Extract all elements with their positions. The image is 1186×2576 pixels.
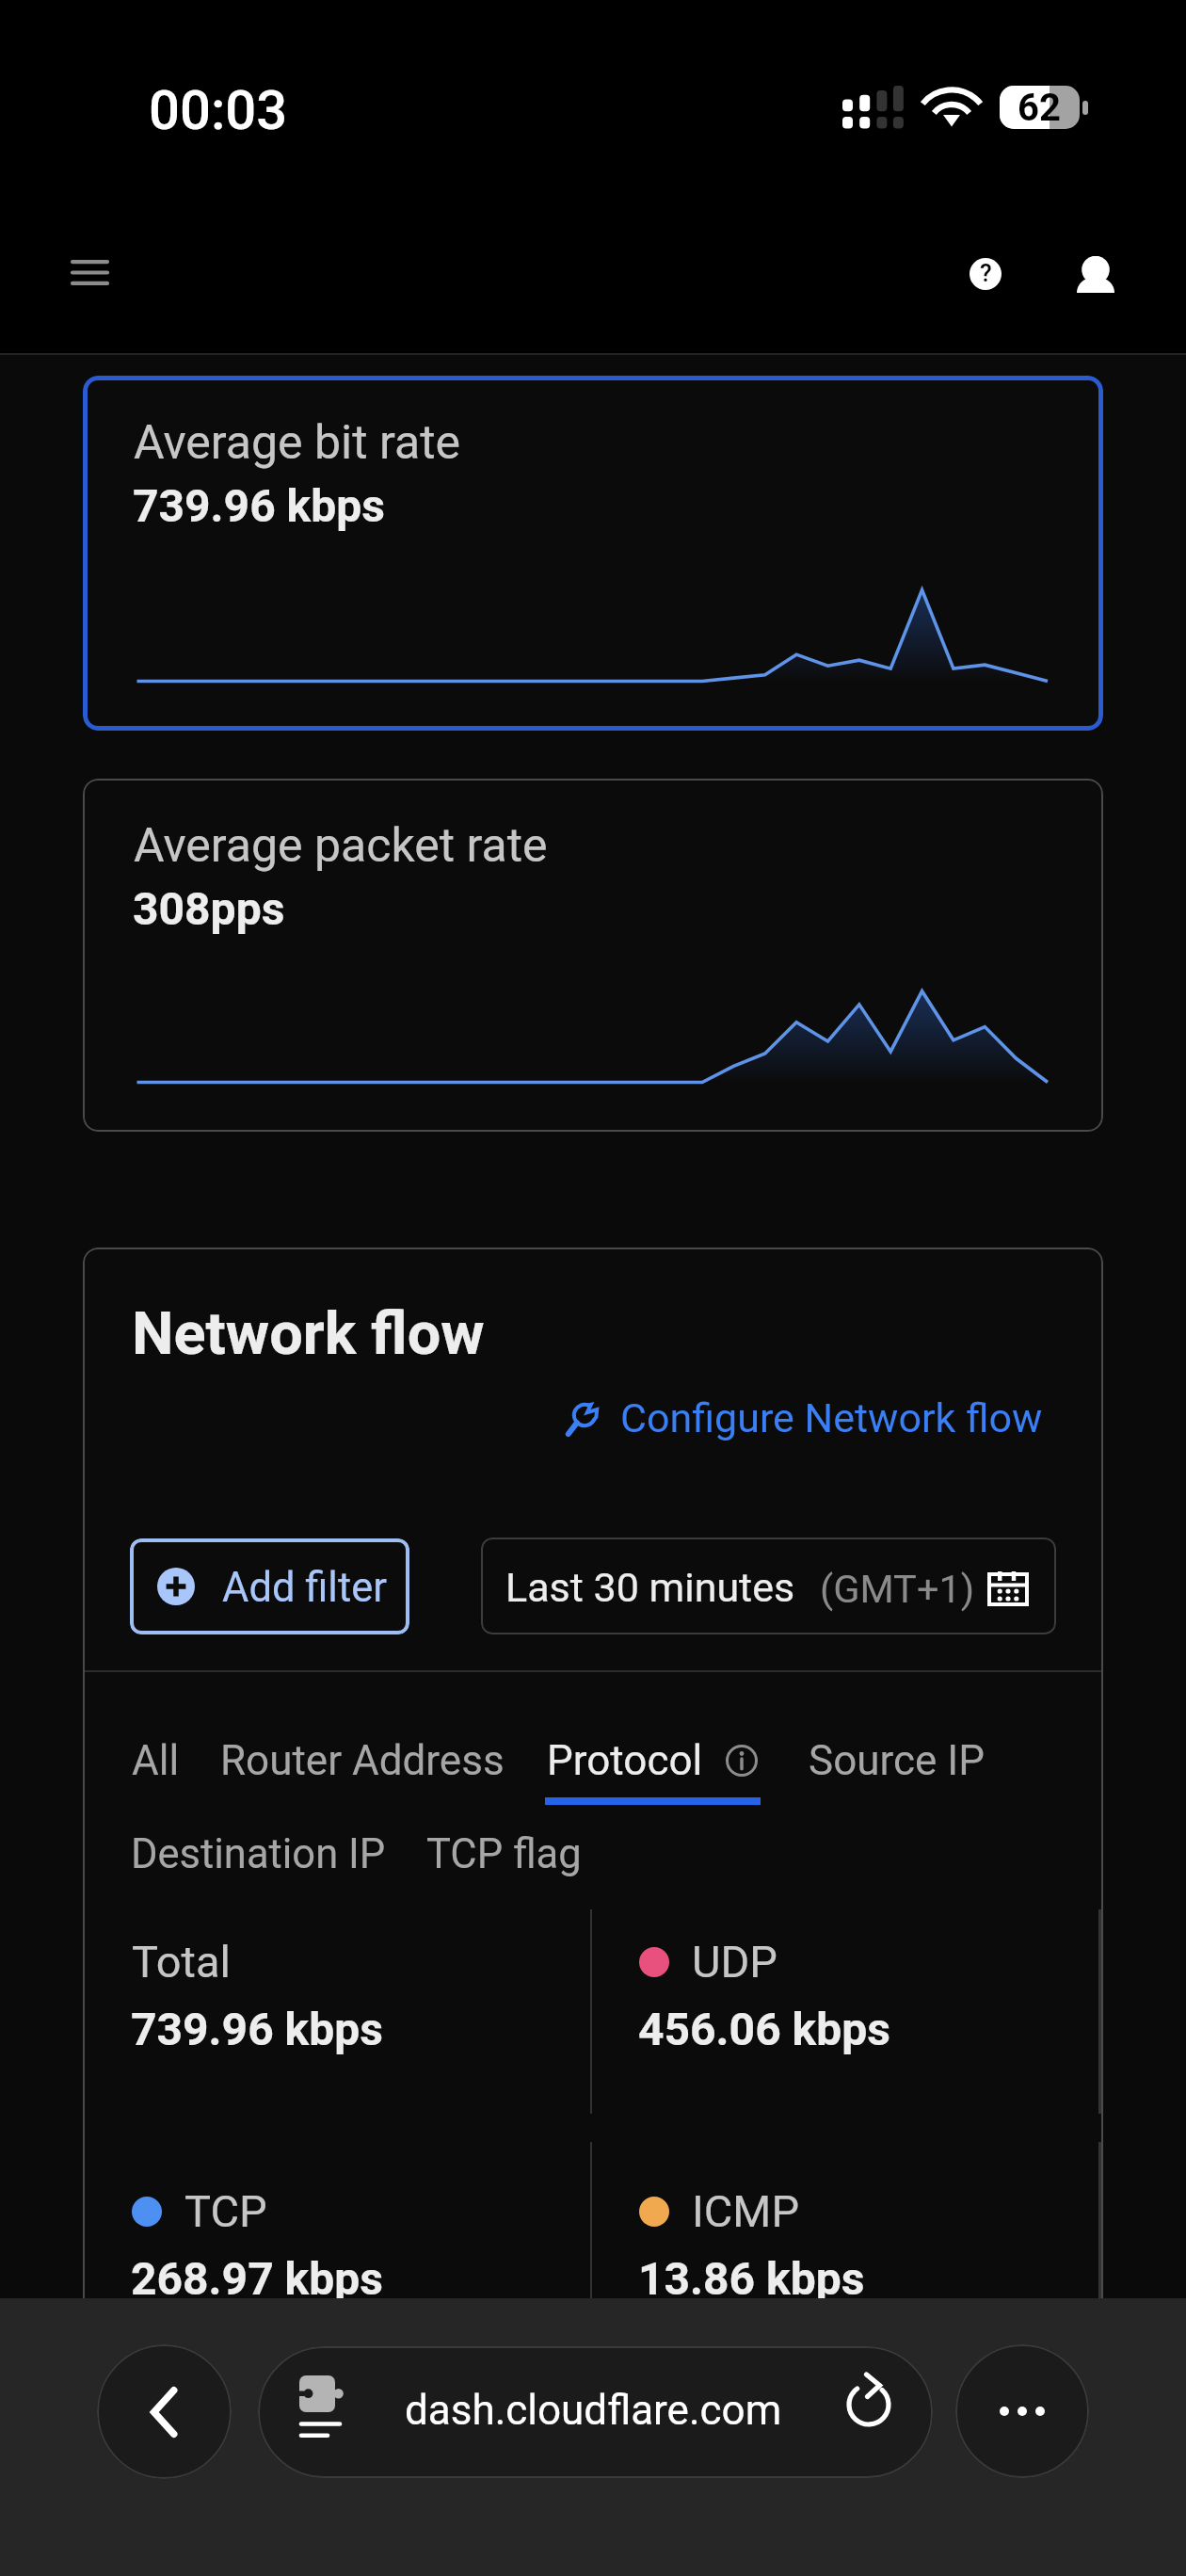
button[interactable]: All (132, 1736, 180, 1785)
staticText: Configure Network flow (620, 1394, 1043, 1441)
staticText: dash.cloudflare.com (405, 2386, 782, 2435)
staticText: Average bit rate (134, 415, 460, 471)
button[interactable]: dash.cloudflare.com (258, 2346, 933, 2478)
staticText: All (132, 1736, 180, 1785)
staticText: 00:03 (149, 78, 288, 142)
staticText: Total (132, 1936, 231, 1988)
staticText: Average packet rate (134, 818, 548, 874)
button[interactable]: Average packet rate (83, 779, 1103, 1132)
button[interactable]: More options (955, 2344, 1089, 2478)
button[interactable]: Account (1051, 230, 1140, 318)
staticText: TCP flag (426, 1830, 582, 1878)
staticText: 62 (1018, 86, 1061, 130)
staticText: 739.96 kbps (131, 2003, 384, 2055)
button[interactable]: Destination IP (131, 1830, 386, 1878)
staticText: ? (980, 259, 992, 287)
staticText: TCP (184, 2185, 267, 2237)
staticText: Source IP (809, 1736, 985, 1785)
staticText: 456.06 kbps (638, 2003, 891, 2055)
button[interactable]: Source IP (809, 1736, 985, 1785)
staticText: 308pps (133, 882, 285, 935)
button[interactable]: Add filter (130, 1538, 409, 1634)
button[interactable]: Menu (42, 225, 136, 319)
staticText: ICMP (692, 2185, 800, 2237)
staticText: Router Address (220, 1736, 505, 1785)
button[interactable]: Average bit rate (83, 376, 1103, 731)
staticText: (GMT+1) (820, 1566, 975, 1612)
staticText: 268.97 kbps (131, 2252, 384, 2305)
button[interactable]: Back (97, 2344, 232, 2479)
staticText: 739.96 kbps (133, 479, 386, 532)
button[interactable]: Configure Network flow (559, 1393, 1056, 1446)
staticText: Destination IP (131, 1830, 386, 1878)
button[interactable]: Router Address (220, 1736, 505, 1785)
button[interactable]: Help (941, 230, 1030, 318)
button[interactable]: Last 30 minutes (481, 1538, 1056, 1634)
staticText: Protocol (547, 1736, 703, 1785)
staticText: 13.86 kbps (638, 2252, 865, 2305)
staticText: Last 30 minutes (505, 1564, 795, 1611)
button[interactable]: TCP flag (426, 1830, 582, 1878)
staticText: UDP (692, 1936, 777, 1988)
staticText: Network flow (132, 1299, 485, 1369)
button[interactable]: Protocol (547, 1736, 758, 1785)
staticText: Add filter (222, 1564, 387, 1612)
